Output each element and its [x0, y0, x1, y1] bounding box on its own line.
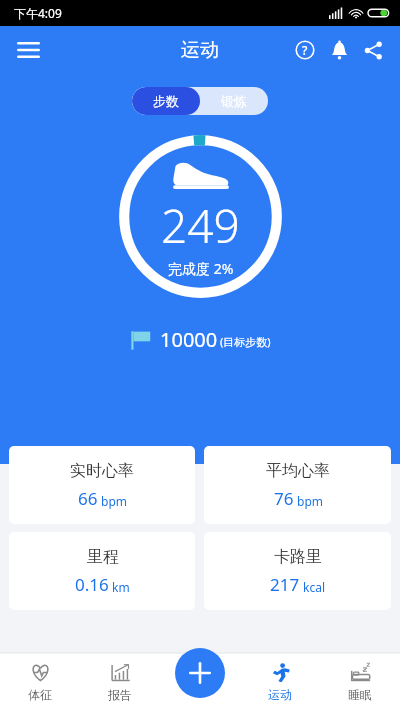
button[interactable]: 里程 [9, 532, 195, 610]
button[interactable]: 报告 [80, 653, 160, 711]
button[interactable]: 实时心率 [9, 446, 195, 524]
staticText: 10000 [160, 326, 218, 353]
staticText: 步数 [153, 93, 179, 109]
staticText: 下午4:09 [14, 5, 62, 21]
staticText: ? [302, 42, 308, 58]
staticText: 卡路里 [274, 547, 322, 567]
staticText: 249 [161, 194, 240, 257]
staticText: bpm [101, 493, 127, 509]
staticText: (目标步数) [220, 334, 271, 349]
button[interactable]: 睡眠 [320, 653, 400, 711]
button[interactable]: Share [356, 33, 390, 67]
staticText: 217 [270, 573, 300, 596]
staticText: 报告 [108, 687, 132, 702]
staticText: 里程 [87, 547, 119, 567]
staticText: bpm [297, 493, 323, 509]
button[interactable]: Add [175, 648, 225, 698]
staticText: kcal [303, 579, 325, 595]
staticText: 体征 [28, 687, 52, 702]
staticText: 76 [274, 487, 294, 510]
staticText: 66 [78, 487, 98, 510]
button[interactable]: Notifications [322, 33, 356, 67]
staticText: km [112, 579, 130, 595]
button[interactable]: Help [288, 33, 322, 67]
button[interactable]: 卡路里 [204, 532, 391, 610]
button[interactable]: 体征 [0, 653, 80, 711]
staticText: 锻炼 [221, 93, 247, 109]
button[interactable]: 锻炼 [200, 87, 268, 115]
button[interactable]: Menu [8, 30, 48, 70]
staticText: 完成度 2% [168, 259, 234, 278]
staticText: 实时心率 [70, 461, 134, 481]
staticText: 运动 [268, 687, 292, 702]
button[interactable]: 平均心率 [204, 446, 391, 524]
staticText: 睡眠 [348, 687, 372, 702]
staticText: 运动 [181, 38, 219, 62]
button[interactable]: 步数 [132, 87, 200, 115]
staticText: 0.16 [75, 573, 109, 596]
staticText: 平均心率 [266, 461, 330, 481]
button[interactable]: 运动 [240, 653, 320, 711]
